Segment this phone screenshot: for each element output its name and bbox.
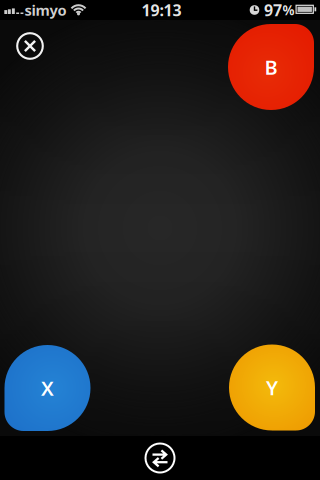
staticText: X [41,375,54,401]
button[interactable]: Close [8,24,52,68]
staticText: % [282,1,294,19]
staticText: Y [266,374,278,401]
button[interactable]: Y [229,344,315,430]
staticText: simyo [24,0,66,20]
staticText: 97 [264,0,282,21]
button[interactable]: B [228,24,314,110]
staticText: 19:13 [141,0,181,21]
button[interactable]: X [4,345,90,431]
button[interactable]: Switch controller [138,436,182,480]
staticText: B [264,54,277,80]
